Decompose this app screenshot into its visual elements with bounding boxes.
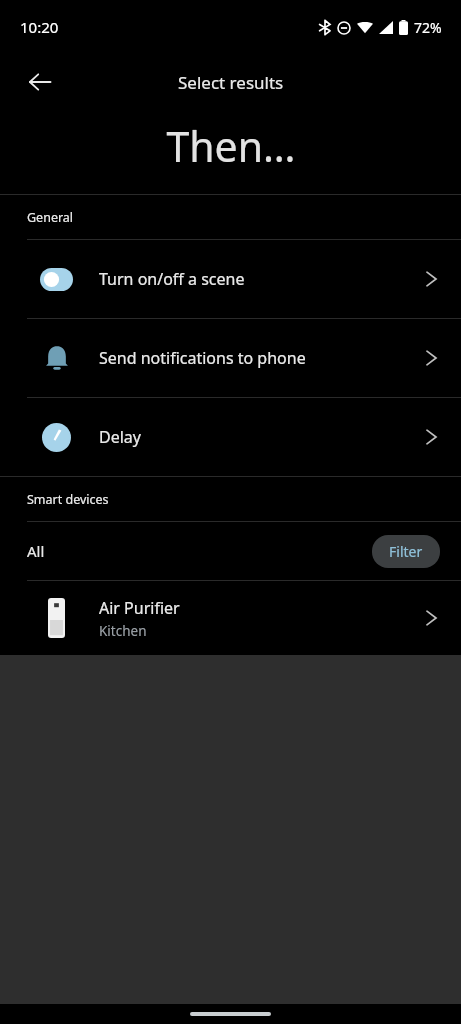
staticText: Kitchen (99, 622, 147, 640)
button[interactable]: Delay (0, 398, 461, 476)
button[interactable]: Filter (372, 535, 440, 568)
staticText: Air Purifier (99, 597, 180, 619)
staticText: 10:20 (20, 17, 59, 37)
staticText: Send notifications to phone (99, 347, 401, 369)
staticText: General (27, 209, 74, 226)
button[interactable]: Send notifications to phone (0, 319, 461, 397)
staticText: Filter (389, 542, 423, 561)
staticText: Turn on/off a scene (99, 268, 401, 290)
staticText: Smart devices (27, 491, 109, 508)
button[interactable]: Turn on/off a scene (0, 240, 461, 318)
staticText: Delay (99, 426, 401, 448)
staticText: Select results (178, 71, 284, 94)
button[interactable]: Back (16, 58, 64, 106)
button[interactable]: Air Purifier (0, 581, 461, 655)
staticText: Then… (166, 118, 296, 174)
staticText: 72% (414, 18, 442, 37)
staticText: All (27, 541, 372, 561)
